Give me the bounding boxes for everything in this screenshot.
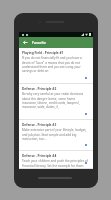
button[interactable]: Share bbox=[84, 112, 88, 116]
button[interactable]: Defense - Principle #4 bbox=[19, 151, 93, 169]
button[interactable]: Playing Field - Principle #1 bbox=[19, 48, 93, 84]
staticText: Playing Field - Principle #1 bbox=[22, 51, 64, 55]
staticText: Be why very careful at your radar decisi… bbox=[22, 92, 89, 108]
staticText: Teach your children and push the princip… bbox=[22, 159, 89, 167]
button[interactable]: Defense - Principle #2 bbox=[19, 84, 93, 120]
staticText: Defense - Principle #4 bbox=[22, 154, 57, 158]
button[interactable]: Defense - Principle #3 bbox=[19, 120, 93, 151]
staticText: Defense - Principle #3 bbox=[22, 123, 57, 127]
staticText: If you do not financially fit and you ha… bbox=[22, 56, 89, 72]
button[interactable]: Share bbox=[84, 161, 88, 165]
staticText: Make extensive part of your lifestyle, b… bbox=[22, 128, 89, 140]
button[interactable]: Share bbox=[84, 143, 88, 147]
button[interactable]: Share bbox=[84, 76, 88, 80]
button[interactable]: Back bbox=[21, 38, 30, 47]
staticText: Favorite bbox=[32, 40, 46, 45]
staticText: Defense - Principle #2 bbox=[22, 87, 57, 91]
